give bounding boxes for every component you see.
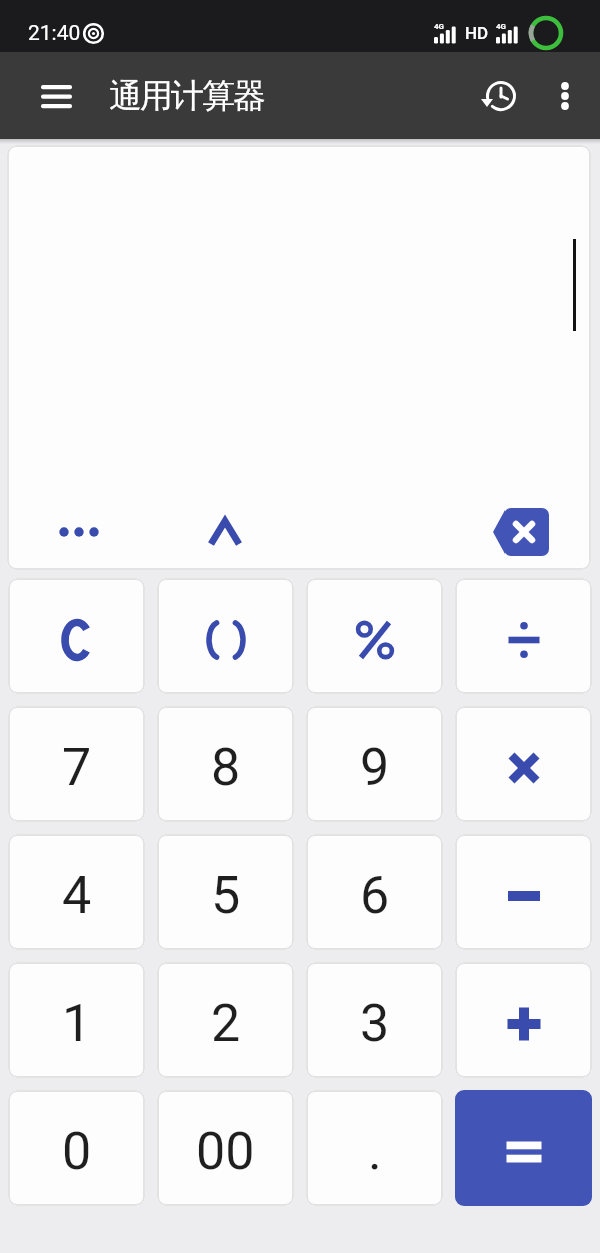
button[interactable]	[157, 578, 294, 694]
staticText: 21:40	[28, 21, 81, 46]
staticText: 2	[211, 993, 241, 1054]
button[interactable]	[455, 962, 592, 1078]
staticText: 00	[196, 1121, 255, 1182]
button[interactable]: 00	[157, 1090, 294, 1206]
button[interactable]	[58, 526, 100, 538]
button[interactable]: 9	[306, 706, 443, 822]
button[interactable]: 7	[8, 706, 145, 822]
staticText: 6	[360, 865, 390, 926]
button[interactable]	[455, 834, 592, 950]
staticText: 4G	[496, 22, 507, 31]
button[interactable]	[207, 517, 243, 547]
staticText: 4G	[434, 22, 445, 31]
button[interactable]: 0	[8, 1090, 145, 1206]
staticText: .	[368, 1121, 382, 1182]
staticText: 1	[62, 993, 92, 1054]
staticText: 通用计算器	[110, 75, 265, 117]
button[interactable]: 1	[8, 962, 145, 1078]
button[interactable]: 5	[157, 834, 294, 950]
button[interactable]	[8, 578, 145, 694]
button[interactable]: 4	[8, 834, 145, 950]
button[interactable]	[470, 68, 532, 124]
staticText: 9	[360, 737, 390, 798]
button[interactable]	[544, 68, 586, 124]
staticText: 5	[211, 865, 241, 926]
button[interactable]	[455, 1090, 592, 1206]
button[interactable]: 2	[157, 962, 294, 1078]
button[interactable]: 6	[306, 834, 443, 950]
staticText: HD	[465, 23, 489, 43]
button[interactable]: 8	[157, 706, 294, 822]
staticText: 7	[62, 737, 92, 798]
button[interactable]	[306, 578, 443, 694]
staticText: 8	[211, 737, 241, 798]
staticText: 0	[62, 1121, 92, 1182]
staticText: 3	[360, 993, 390, 1054]
button[interactable]	[32, 72, 80, 120]
staticText: 4	[62, 865, 92, 926]
button[interactable]	[455, 578, 592, 694]
button[interactable]	[493, 508, 549, 556]
button[interactable]: .	[306, 1090, 443, 1206]
button[interactable]	[455, 706, 592, 822]
button[interactable]: 3	[306, 962, 443, 1078]
